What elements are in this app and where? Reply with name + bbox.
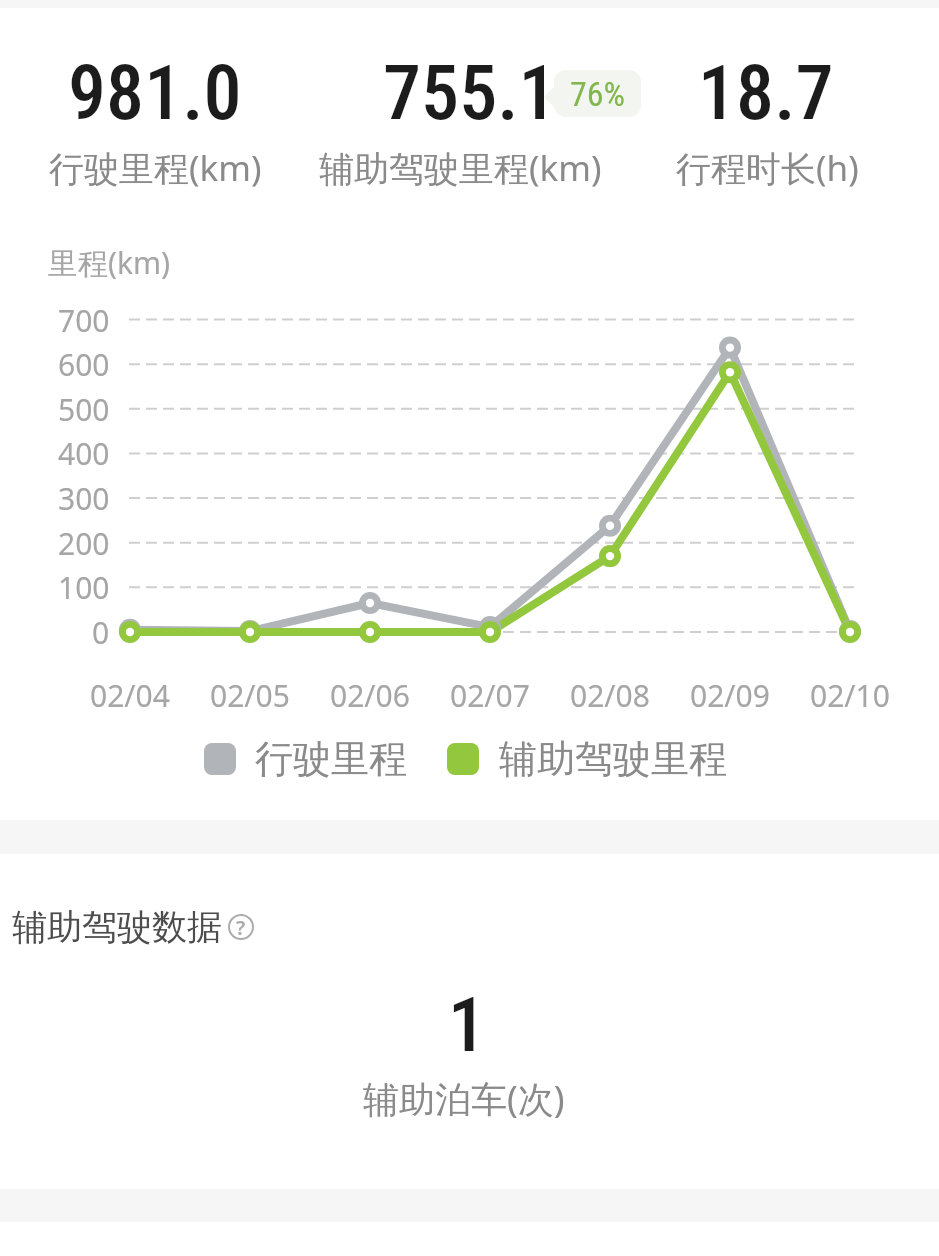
staticText: 1	[448, 980, 487, 1056]
staticText: ?	[236, 914, 246, 940]
button[interactable]: ?	[228, 914, 254, 940]
staticText: 行驶里程(km)	[49, 144, 262, 188]
staticText: 02/08	[570, 675, 650, 716]
staticText: 981.0	[68, 48, 242, 124]
staticText: 里程(km)	[48, 242, 171, 280]
staticText: 02/04	[90, 675, 170, 716]
staticText: 行驶里程	[255, 735, 407, 783]
staticText: 200	[58, 523, 110, 564]
staticText: 辅助泊车(次)	[363, 1074, 565, 1118]
staticText: 100	[58, 567, 110, 608]
staticText: 02/07	[450, 675, 530, 716]
staticText: 02/05	[210, 675, 290, 716]
staticText: 600	[58, 344, 110, 385]
staticText: 755.1	[383, 48, 557, 124]
staticText: 300	[58, 478, 110, 519]
staticText: 02/10	[810, 675, 890, 716]
button[interactable]: 76%	[554, 70, 641, 117]
staticText: 02/06	[330, 675, 410, 716]
staticText: 辅助驾驶里程	[499, 735, 727, 783]
staticText: 辅助驾驶数据	[12, 905, 222, 949]
staticText: 500	[58, 389, 110, 430]
staticText: 76%	[570, 74, 626, 114]
staticText: 辅助驾驶里程(km)	[319, 144, 602, 188]
staticText: 18.7	[698, 48, 834, 124]
staticText: 700	[58, 300, 110, 341]
staticText: 0	[92, 612, 110, 653]
staticText: 02/09	[690, 675, 770, 716]
button[interactable]: 行驶里程	[204, 733, 727, 785]
staticText: 行程时长(h)	[676, 144, 859, 188]
staticText: 400	[58, 433, 110, 474]
